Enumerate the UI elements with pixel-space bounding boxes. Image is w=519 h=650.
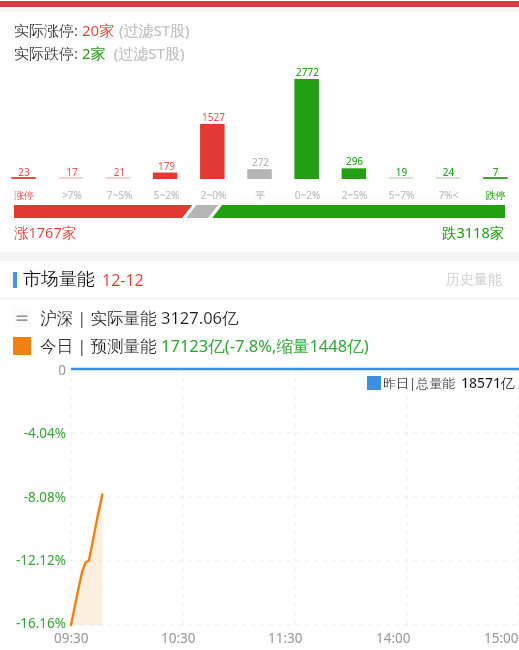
staticText: 市场量能 <box>23 268 95 291</box>
staticText: 5~2% <box>143 188 190 202</box>
staticText: 昨日|总量能 <box>383 374 456 392</box>
staticText: 10:30 <box>161 629 196 647</box>
staticText: 涨停 <box>0 189 48 202</box>
staticText: 11:30 <box>268 629 303 647</box>
staticText: 历史量能 <box>446 271 502 289</box>
staticText: 实际跌停: <box>14 43 82 63</box>
staticText: 17123亿(-7.8%,缩量1448亿) <box>161 334 369 357</box>
staticText: -16.16% <box>0 614 66 632</box>
staticText: 2~5% <box>331 188 378 202</box>
staticText: 17 <box>48 165 96 179</box>
staticText: 09:30 <box>54 629 89 647</box>
staticText: 5~7% <box>378 188 425 202</box>
staticText: 实际涨停: <box>14 20 82 40</box>
staticText: 296 <box>331 154 378 168</box>
staticText: 1527 <box>190 110 237 124</box>
staticText: 跌3118家 <box>442 222 505 242</box>
staticText: 今日 | 预测量能 <box>40 334 161 357</box>
staticText: -8.08% <box>0 488 66 506</box>
staticText: 20家 <box>82 20 115 40</box>
button[interactable]: 历史量能 <box>442 267 506 293</box>
staticText: 14:00 <box>376 629 411 647</box>
staticText: 12-12 <box>102 269 144 291</box>
staticText: 2~0% <box>190 188 237 202</box>
staticText: 18571亿 <box>461 373 516 392</box>
staticText: 7 <box>472 165 519 179</box>
staticText: 平 <box>237 189 284 202</box>
staticText: -12.12% <box>0 551 66 569</box>
staticText: (过滤ST股) <box>106 43 185 63</box>
staticText: (过滤ST股) <box>115 20 190 40</box>
staticText: 涨1767家 <box>14 222 77 242</box>
staticText: 2家 <box>82 43 106 63</box>
staticText: -4.04% <box>0 424 66 442</box>
staticText: 272 <box>237 155 284 169</box>
staticText: >7% <box>48 188 96 202</box>
staticText: 7%< <box>425 188 472 202</box>
staticText: 15:00 <box>484 629 519 647</box>
staticText: 7~5% <box>96 188 143 202</box>
staticText: 21 <box>96 165 143 179</box>
staticText: 24 <box>425 165 472 179</box>
staticText: 19 <box>378 165 425 179</box>
staticText: 179 <box>143 159 190 173</box>
staticText: 跌停 <box>472 189 519 202</box>
staticText: 2772 <box>284 65 331 79</box>
staticText: 23 <box>0 165 48 179</box>
other: 实际量能 <box>13 309 31 327</box>
staticText: 0 <box>0 361 66 379</box>
staticText: 沪深 | 实际量能 3127.06亿 <box>40 306 239 329</box>
staticText: 0~2% <box>284 188 331 202</box>
